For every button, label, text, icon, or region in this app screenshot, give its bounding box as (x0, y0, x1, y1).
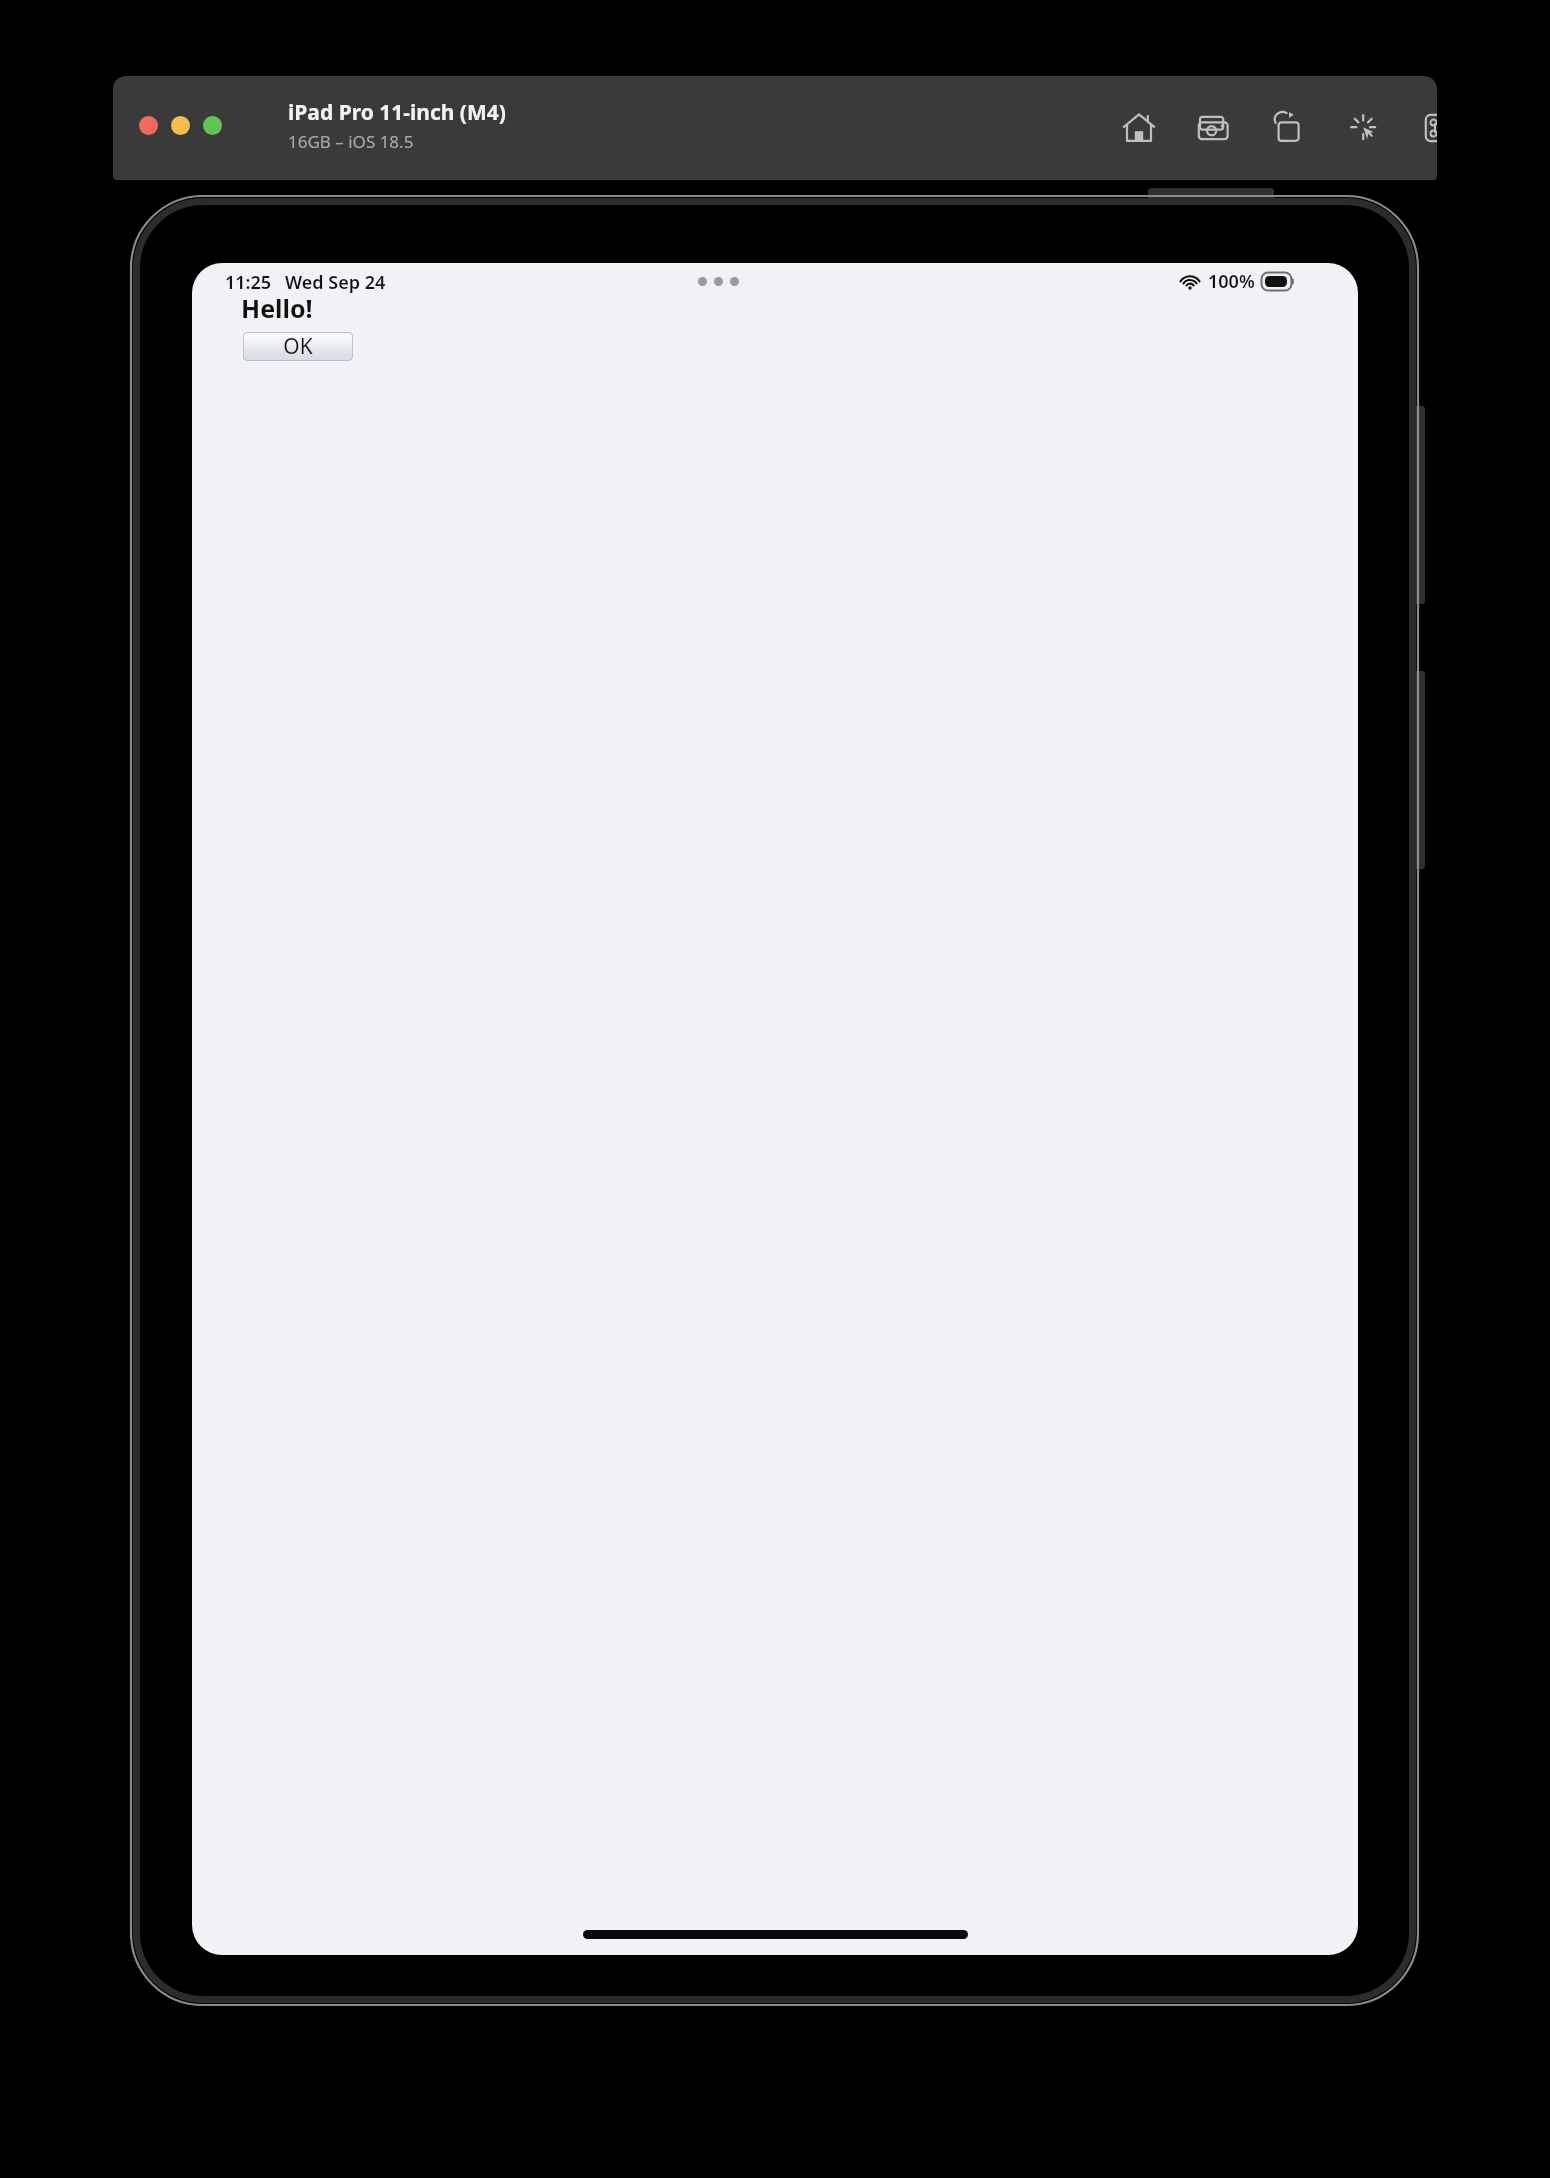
staticText: Wed Sep 24 (285, 270, 386, 295)
button[interactable]: Rotate (1263, 102, 1315, 154)
staticText: 11:25 (225, 270, 272, 295)
button[interactable]: Power (1148, 188, 1274, 200)
button[interactable]: Volume up (1414, 406, 1425, 604)
staticText: 100% (1208, 269, 1255, 294)
staticText: OK (283, 332, 313, 361)
staticText: 16GB – iOS 18.5 (288, 130, 414, 153)
button[interactable]: OK (243, 332, 353, 361)
staticText: iPad Pro 11-inch (M4) (288, 98, 506, 127)
staticText: Hello! (241, 291, 313, 325)
button[interactable]: Maximise (203, 116, 222, 135)
button[interactable]: Multitasking controls (698, 277, 739, 286)
button[interactable]: Home (1113, 102, 1165, 154)
button[interactable]: Close (139, 116, 158, 135)
button[interactable]: Touch (1338, 102, 1390, 154)
button[interactable]: Keyboard shortcuts (1413, 102, 1437, 154)
button[interactable]: Minimise (171, 116, 190, 135)
button[interactable]: Volume down (1414, 671, 1425, 869)
button[interactable]: Screenshot (1188, 102, 1240, 154)
